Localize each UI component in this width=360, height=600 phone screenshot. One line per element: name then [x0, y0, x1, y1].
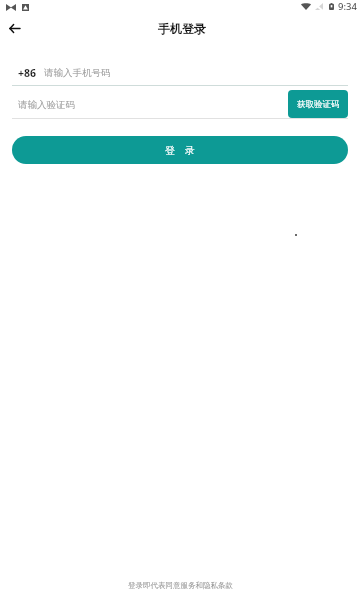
button[interactable]: Back — [0, 14, 28, 42]
button[interactable]: 获取验证码 — [288, 90, 348, 118]
staticText: 手机登录 — [158, 21, 206, 36]
button[interactable]: 登录即代表同意服务和隐私条款 — [128, 581, 233, 590]
button[interactable]: +86 — [12, 62, 42, 85]
staticText: 请输入验证码 — [18, 99, 75, 111]
staticText: +86 — [18, 66, 37, 80]
button[interactable]: 登 录 — [12, 136, 348, 164]
button[interactable]: 请输入验证码 — [12, 90, 282, 118]
staticText: 登 录 — [165, 143, 195, 157]
button[interactable]: 请输入手机号码 — [42, 62, 288, 85]
staticText: 请输入手机号码 — [44, 67, 111, 79]
staticText: 获取验证码 — [297, 99, 340, 110]
staticText: 9:34 — [338, 0, 357, 13]
